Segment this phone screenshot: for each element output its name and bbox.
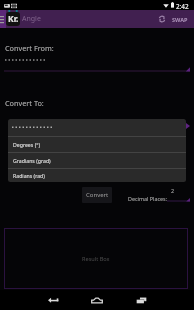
staticText: SWAP (172, 16, 188, 23)
button[interactable]: Convert (82, 187, 112, 203)
button[interactable]: Home (88, 291, 106, 309)
button[interactable]: Decimal places (166, 186, 190, 202)
staticText: Convert From: (5, 43, 54, 53)
button[interactable]: Recent apps (132, 291, 150, 309)
button[interactable]: Navigation menu (0, 10, 6, 28)
staticText: Kr. (8, 13, 19, 25)
button[interactable]: Back (44, 291, 62, 309)
button[interactable]: Selected unit (8, 119, 186, 136)
staticText: Gradians (grad) (13, 157, 51, 164)
staticText: Decimal Places: (128, 195, 168, 202)
staticText: 2:42 (176, 2, 189, 11)
staticText: 2 (171, 187, 175, 194)
button[interactable]: Radians (rad) (8, 169, 186, 182)
staticText: Convert (86, 191, 109, 199)
button[interactable]: Refresh (155, 10, 169, 28)
staticText: Radians (rad) (13, 172, 45, 179)
button[interactable]: Convert from unit (0, 56, 194, 74)
button[interactable]: SWAP (167, 10, 193, 28)
staticText: Degrees (°) (13, 141, 40, 148)
staticText: Convert To: (5, 98, 44, 108)
staticText: Result Box (82, 255, 110, 263)
staticText: Angle (22, 14, 41, 24)
button[interactable]: Degrees (°) (8, 137, 186, 152)
button[interactable]: Gradians (grad) (8, 153, 186, 168)
